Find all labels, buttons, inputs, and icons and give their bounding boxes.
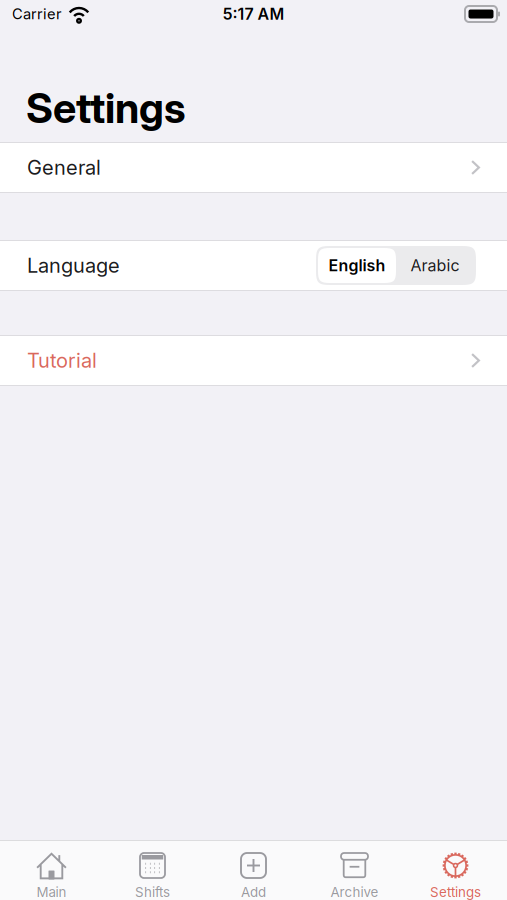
button[interactable]: General [0,142,507,193]
staticText: Tutorial [27,348,97,373]
button[interactable]: Settings [405,841,506,900]
staticText: Settings [430,884,481,900]
button[interactable]: Arabic [396,248,474,283]
button[interactable]: English [318,248,396,283]
staticText: Language [27,253,120,278]
staticText: Settings [26,83,186,133]
button[interactable]: Archive [304,841,405,900]
staticText: Main [36,884,66,900]
staticText: English [328,256,385,275]
staticText: 5:17 AM [222,4,284,24]
staticText: Arabic [410,256,459,275]
staticText: Shifts [135,884,170,900]
staticText: General [27,155,101,180]
staticText: Add [241,884,266,900]
staticText: Archive [330,884,378,900]
button[interactable]: Tutorial [0,335,507,386]
staticText: Carrier [12,5,62,23]
button[interactable]: Main [1,841,102,900]
button[interactable]: Add [203,841,304,900]
button[interactable]: Shifts [102,841,203,900]
